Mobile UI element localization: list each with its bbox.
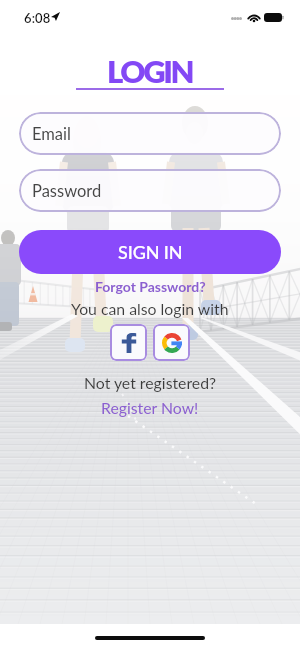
other: Location: [51, 12, 60, 21]
button[interactable]: SIGN IN: [19, 230, 281, 274]
button[interactable]: Sign in with Facebook: [110, 324, 147, 361]
button[interactable]: Email: [19, 112, 281, 155]
button[interactable]: Sign in with Google: [153, 324, 190, 361]
staticText: 6:08: [24, 10, 51, 26]
staticText: LOGIN: [107, 52, 193, 89]
button[interactable]: Register Now!: [97, 397, 203, 418]
staticText: You can also login with: [71, 299, 229, 318]
staticText: SIGN IN: [118, 241, 183, 263]
button[interactable]: Forgot Password?: [91, 277, 210, 296]
staticText: Email: [32, 124, 71, 144]
button[interactable]: Password: [19, 169, 281, 212]
staticText: Register Now!: [101, 398, 199, 417]
staticText: Not yet registered?: [84, 373, 217, 392]
staticText: Password: [32, 181, 102, 201]
staticText: Forgot Password?: [95, 278, 206, 295]
